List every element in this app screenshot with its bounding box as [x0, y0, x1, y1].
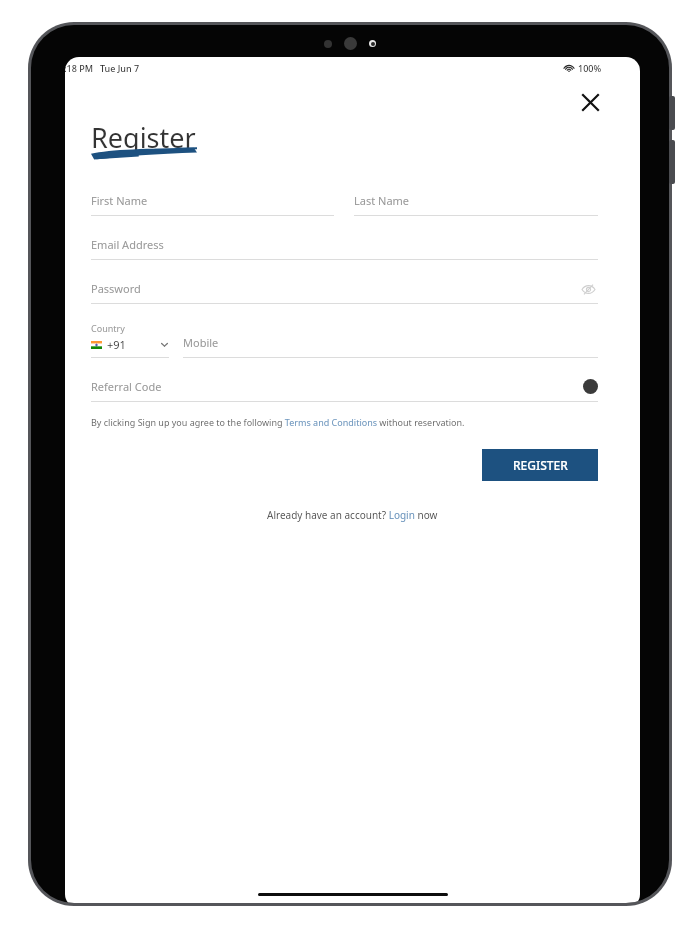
staticText: Mobile	[183, 335, 219, 350]
button[interactable]: Country	[91, 322, 169, 358]
button[interactable]: Show password	[578, 279, 598, 299]
staticText: Referral Code	[91, 379, 162, 394]
staticText: +91	[107, 337, 126, 352]
button[interactable]: Last Name	[354, 193, 598, 216]
staticText: 100%	[578, 62, 602, 74]
button[interactable]: Referral info	[583, 379, 598, 394]
staticText: First Name	[91, 193, 148, 208]
staticText: By clicking Sign up you agree to the fol…	[91, 416, 465, 428]
button[interactable]: REGISTER	[482, 449, 598, 481]
button[interactable]: Password	[91, 281, 598, 304]
staticText: Already have an account? Login now	[267, 508, 438, 522]
staticText: Last Name	[354, 193, 410, 208]
staticText: 4:18 PM Tue Jun 7	[65, 62, 140, 74]
staticText: REGISTER	[513, 457, 568, 473]
button[interactable]: Already have an account? Login now	[267, 508, 438, 522]
staticText: Email Address	[91, 237, 164, 252]
staticText: Register	[91, 119, 196, 156]
button[interactable]: Email Address	[91, 237, 598, 260]
button[interactable]: First Name	[91, 193, 334, 216]
button[interactable]: Close	[576, 88, 604, 116]
staticText: Country	[91, 322, 125, 334]
staticText: Password	[91, 281, 141, 296]
button[interactable]: Mobile	[183, 335, 598, 358]
button[interactable]: Referral Code	[91, 379, 598, 402]
